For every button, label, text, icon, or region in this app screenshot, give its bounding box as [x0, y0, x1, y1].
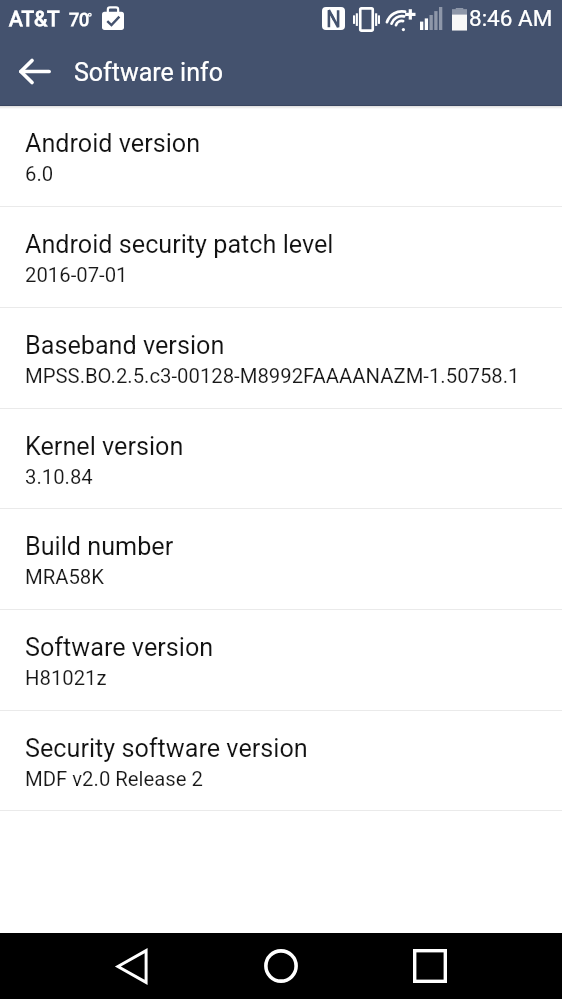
button[interactable]: Kernel version — [0, 409, 562, 509]
staticText: Security software version — [25, 734, 308, 764]
staticText: 3.10.84 — [25, 465, 93, 489]
staticText: Software version — [25, 633, 214, 663]
staticText: MPSS.BO.2.5.c3-00128-M8992FAAAANAZM-1.50… — [25, 364, 520, 388]
button[interactable]: Android version — [0, 106, 562, 207]
staticText: 8:46 AM — [469, 5, 553, 31]
button[interactable]: Build number — [0, 509, 562, 610]
staticText: MDF v2.0 Release 2 — [25, 767, 204, 791]
button[interactable]: Recent apps — [398, 933, 462, 999]
staticText: MRA58K — [25, 565, 105, 589]
staticText: AT&T — [9, 7, 60, 32]
button[interactable]: Baseband version — [0, 308, 562, 409]
button[interactable]: Android security patch level — [0, 207, 562, 308]
staticText: 70 — [69, 9, 90, 30]
staticText: Build number — [25, 532, 174, 562]
staticText: 2016-07-01 — [25, 263, 128, 287]
staticText: Android version — [25, 129, 201, 159]
staticText: Baseband version — [25, 331, 225, 361]
button[interactable]: Back — [100, 933, 164, 999]
button[interactable]: Security software version — [0, 711, 562, 811]
staticText: Kernel version — [25, 432, 184, 462]
staticText: H81021z — [25, 666, 107, 690]
button[interactable]: Home — [249, 933, 313, 999]
button[interactable]: Software version — [0, 610, 562, 711]
button[interactable]: Navigate up — [6, 43, 62, 99]
staticText: 6.0 — [25, 162, 54, 186]
staticText: Software info — [74, 58, 223, 87]
staticText: Android security patch level — [25, 230, 334, 260]
